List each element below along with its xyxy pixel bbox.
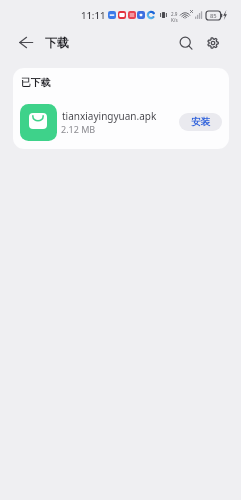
staticText: 85	[210, 12, 217, 20]
staticText: 11:11	[81, 9, 106, 22]
staticText: 2.12 MB	[61, 123, 96, 135]
staticText: 已下载	[21, 77, 51, 89]
button[interactable]: Settings	[200, 30, 225, 55]
staticText: 2.9	[171, 11, 178, 17]
staticText: tianxiayingyuan.apk	[62, 109, 157, 123]
button[interactable]: 安装	[179, 113, 222, 131]
staticText: K/s	[171, 17, 178, 23]
button[interactable]: Back	[11, 33, 41, 51]
button[interactable]: Search	[174, 31, 199, 56]
staticText: 下载	[45, 35, 69, 50]
staticText: 安装	[191, 116, 210, 128]
